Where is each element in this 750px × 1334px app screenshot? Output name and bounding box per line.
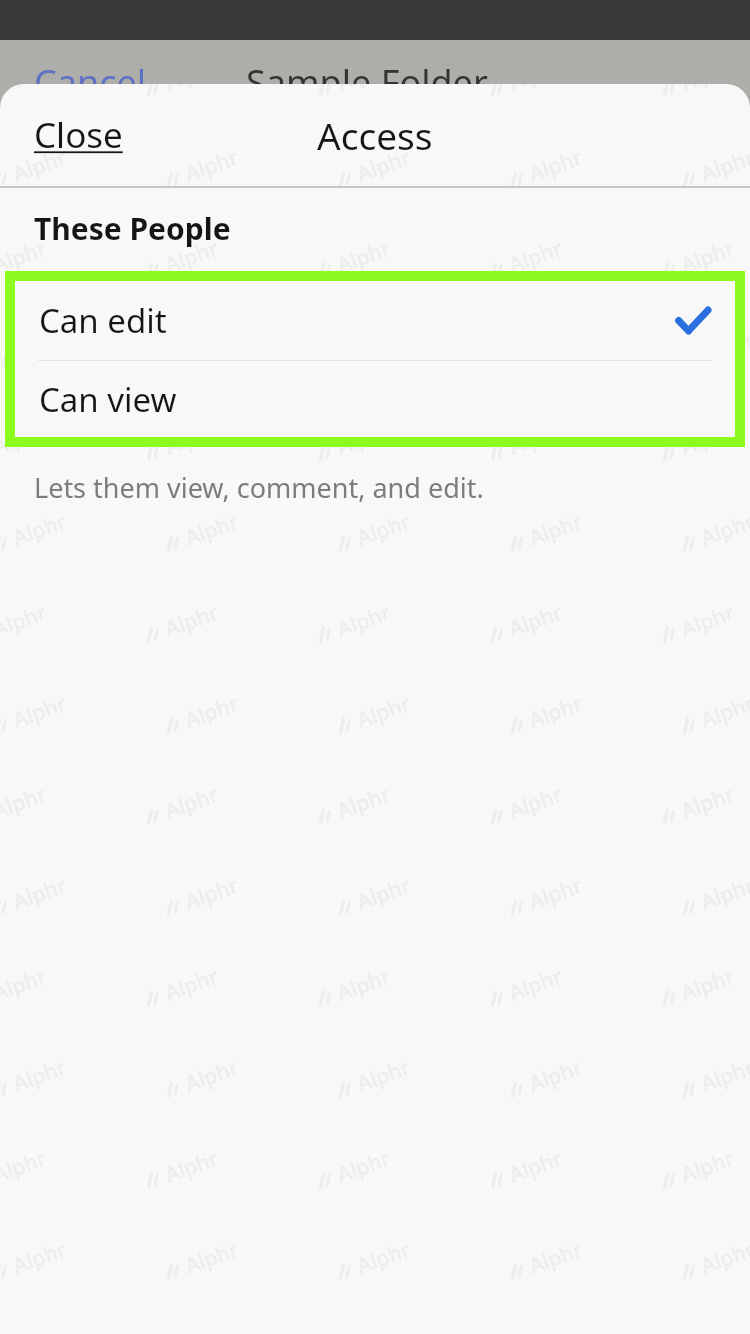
staticText: Alphr [677, 233, 739, 280]
staticText: Alphr [353, 688, 415, 735]
staticText: Alphr [9, 506, 71, 553]
staticText: Alphr [677, 1143, 739, 1190]
staticText: Alphr [525, 506, 587, 553]
button[interactable]: Can edit [15, 281, 735, 360]
staticText: Cancel [34, 58, 147, 107]
staticText: Alphr [505, 961, 567, 1008]
staticText: Close [34, 111, 123, 159]
staticText: Alphr [677, 415, 739, 462]
staticText: Alphr [0, 1143, 51, 1190]
staticText: Alphr [181, 1052, 243, 1099]
staticText: Alphr [525, 688, 587, 735]
staticText: Alphr [697, 688, 750, 735]
staticText: Alphr [525, 142, 587, 189]
button[interactable]: Can view [15, 361, 735, 437]
staticText: Alphr [181, 870, 243, 917]
other: Selected [677, 308, 709, 334]
staticText: These People [34, 208, 231, 249]
button[interactable]: Close [34, 111, 123, 159]
staticText: Alphr [353, 506, 415, 553]
staticText: Alphr [333, 233, 395, 280]
staticText: Can view [39, 377, 177, 422]
staticText: Alphr [9, 142, 71, 189]
staticText: Alphr [161, 415, 223, 462]
staticText: Alphr [353, 142, 415, 189]
staticText: Alphr [677, 961, 739, 1008]
staticText: Alphr [161, 961, 223, 1008]
staticText: Alphr [677, 597, 739, 644]
staticText: Alphr [0, 84, 51, 98]
staticText: Alphr [333, 597, 395, 644]
staticText: Alphr [333, 415, 395, 462]
staticText: Alphr [333, 961, 395, 1008]
staticText: Alphr [161, 1143, 223, 1190]
staticText: Alphr [333, 779, 395, 826]
staticText: Alphr [181, 1234, 243, 1281]
staticText: Alphr [0, 415, 51, 462]
staticText: Alphr [161, 779, 223, 826]
staticText: Alphr [525, 1052, 587, 1099]
staticText: Alphr [353, 1052, 415, 1099]
staticText: Alphr [0, 961, 51, 1008]
staticText: Alphr [353, 1234, 415, 1281]
staticText: Alphr [505, 1143, 567, 1190]
staticText: Alphr [9, 688, 71, 735]
staticText: Alphr [697, 870, 750, 917]
staticText: Alphr [9, 870, 71, 917]
staticText: Alphr [697, 142, 750, 189]
staticText: Alphr [161, 597, 223, 644]
staticText: Access [317, 110, 433, 160]
staticText: Alphr [677, 84, 739, 98]
staticText: Alphr [9, 324, 71, 371]
staticText: Alphr [697, 1234, 750, 1281]
staticText: Alphr [525, 1234, 587, 1281]
staticText: Sample Folder [246, 58, 488, 107]
staticText: Alphr [0, 779, 51, 826]
staticText: Alphr [161, 233, 223, 280]
staticText: Alphr [505, 597, 567, 644]
staticText: Alphr [525, 870, 587, 917]
staticText: Alphr [0, 233, 51, 280]
staticText: Alphr [505, 415, 567, 462]
staticText: Alphr [353, 870, 415, 917]
staticText: Alphr [9, 1234, 71, 1281]
staticText: Alphr [505, 233, 567, 280]
staticText: Can edit [39, 298, 167, 343]
staticText: Alphr [697, 324, 750, 371]
staticText: Alphr [9, 1052, 71, 1099]
staticText: Lets them view, comment, and edit. [34, 469, 484, 506]
staticText: Alphr [181, 142, 243, 189]
staticText: Alphr [333, 1143, 395, 1190]
staticText: Alphr [697, 506, 750, 553]
staticText: Alphr [181, 688, 243, 735]
staticText: Alphr [505, 779, 567, 826]
staticText: Alphr [677, 779, 739, 826]
staticText: Alphr [0, 597, 51, 644]
staticText: Alphr [697, 1052, 750, 1099]
staticText: Alphr [181, 506, 243, 553]
